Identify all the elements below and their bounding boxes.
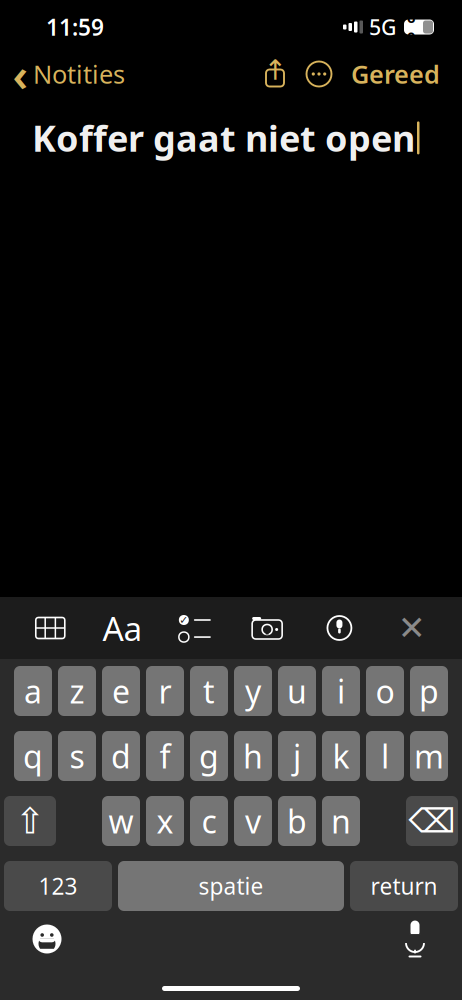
button[interactable]: m — [410, 731, 448, 781]
button[interactable]: v — [234, 796, 272, 846]
button[interactable]: o — [366, 666, 404, 716]
button[interactable]: q — [14, 731, 52, 781]
staticText: b — [287, 800, 307, 842]
staticText: q — [23, 735, 43, 777]
staticText: 60 — [407, 7, 415, 46]
button[interactable]: Gereed — [341, 50, 450, 98]
button[interactable]: r — [146, 666, 184, 716]
staticText: spatie — [198, 871, 263, 901]
staticText: ⇧ — [15, 801, 45, 841]
button[interactable]: n — [322, 796, 360, 846]
staticText: 11:59 — [46, 12, 104, 42]
button[interactable]: ‹ — [0, 50, 125, 98]
button[interactable]: i — [322, 666, 360, 716]
button[interactable]: s — [58, 731, 96, 781]
staticText: Koffer gaat niet open — [32, 114, 415, 162]
staticText: s — [69, 735, 84, 777]
button[interactable]: b — [278, 796, 316, 846]
staticText: r — [158, 670, 171, 712]
button[interactable]: p — [410, 666, 448, 716]
staticText: d — [111, 735, 131, 777]
button[interactable]: e — [102, 666, 140, 716]
staticText: e — [112, 670, 130, 712]
staticText: p — [419, 670, 439, 712]
staticText: return — [370, 871, 437, 901]
button[interactable]: g — [190, 731, 228, 781]
button[interactable]: z — [58, 666, 96, 716]
button[interactable]: k — [322, 731, 360, 781]
button[interactable]: 123 — [4, 861, 112, 911]
button[interactable]: t — [190, 666, 228, 716]
button[interactable]: Shift — [4, 796, 56, 846]
button[interactable]: Share — [253, 54, 297, 94]
button[interactable]: w — [102, 796, 140, 846]
staticText: j — [293, 735, 301, 777]
staticText: n — [331, 800, 351, 842]
button[interactable]: f — [146, 731, 184, 781]
staticText: ✓ — [179, 614, 188, 626]
staticText: ‹ — [12, 44, 28, 104]
button[interactable]: More options — [297, 54, 341, 94]
staticText: m — [414, 735, 444, 777]
button[interactable]: y — [234, 666, 272, 716]
button[interactable]: Delete — [406, 796, 458, 846]
button[interactable]: Insert table — [28, 606, 72, 650]
button[interactable]: x — [146, 796, 184, 846]
staticText: x — [156, 800, 173, 842]
staticText: t — [203, 670, 215, 712]
staticText: 123 — [38, 871, 77, 901]
staticText: l — [381, 735, 389, 777]
staticText: c — [201, 800, 216, 842]
button[interactable]: d — [102, 731, 140, 781]
staticText: Aa — [103, 606, 143, 650]
staticText: Notities — [33, 57, 125, 91]
staticText: a — [24, 670, 42, 712]
staticText: 5G — [369, 13, 397, 41]
staticText: Gereed — [351, 57, 440, 91]
staticText: ⌫ — [408, 802, 455, 840]
staticText: k — [332, 735, 349, 777]
button[interactable]: return — [350, 861, 458, 911]
button[interactable]: u — [278, 666, 316, 716]
staticText: f — [159, 735, 170, 777]
staticText: o — [375, 670, 394, 712]
button[interactable]: Markup — [317, 606, 361, 650]
staticText: ↑ — [263, 54, 286, 86]
staticText: h — [243, 735, 263, 777]
button[interactable]: a — [14, 666, 52, 716]
button[interactable]: Close keyboard — [390, 606, 434, 650]
button[interactable]: c — [190, 796, 228, 846]
staticText: g — [199, 735, 219, 777]
staticText: y — [245, 670, 261, 712]
staticText: z — [69, 670, 84, 712]
staticText: v — [245, 800, 261, 842]
button[interactable]: Dictation — [390, 917, 440, 961]
staticText: i — [337, 670, 345, 712]
staticText: w — [108, 800, 133, 842]
button[interactable]: Checklist — [173, 606, 217, 650]
staticText: u — [287, 670, 307, 712]
button[interactable]: h — [234, 731, 272, 781]
button[interactable]: Emoji — [22, 917, 72, 961]
button[interactable]: l — [366, 731, 404, 781]
button[interactable]: spatie — [118, 861, 344, 911]
staticText: ✕ — [398, 609, 426, 647]
button[interactable]: j — [278, 731, 316, 781]
button[interactable]: Text formatting — [101, 606, 145, 650]
button[interactable]: Camera — [245, 606, 289, 650]
